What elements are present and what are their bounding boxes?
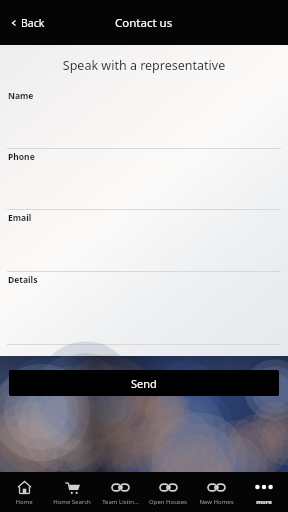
staticText: New Homes xyxy=(199,498,234,506)
button[interactable]: Home Search xyxy=(48,472,96,512)
button[interactable]: Open Houses xyxy=(144,472,192,512)
button[interactable]: Back xyxy=(6,10,49,36)
button[interactable]: Name xyxy=(0,88,288,149)
button[interactable]: Email xyxy=(0,210,288,272)
staticText: Send xyxy=(131,376,157,391)
staticText: Contact us xyxy=(115,15,173,31)
staticText: Email xyxy=(8,212,32,224)
staticText: Speak with a representative xyxy=(0,57,288,74)
button[interactable]: Team Listin... xyxy=(96,472,144,512)
button[interactable]: more xyxy=(240,472,288,512)
staticText: Details xyxy=(8,274,38,286)
staticText: Name xyxy=(8,90,34,102)
staticText: Home xyxy=(15,498,33,506)
button[interactable]: Home xyxy=(0,472,48,512)
staticText: Back xyxy=(21,16,45,30)
staticText: Open Houses xyxy=(149,498,187,506)
staticText: more xyxy=(256,498,272,506)
button[interactable]: New Homes xyxy=(192,472,240,512)
staticText: Phone xyxy=(8,151,35,163)
button[interactable]: Details xyxy=(0,272,288,345)
staticText: Home Search xyxy=(53,498,91,506)
button[interactable]: Phone xyxy=(0,149,288,210)
button[interactable]: Send xyxy=(9,370,279,396)
staticText: Team Listin... xyxy=(102,498,139,506)
